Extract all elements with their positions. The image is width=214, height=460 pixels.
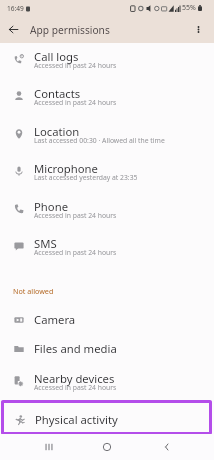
staticText: Accessed in past 24 hours bbox=[34, 248, 117, 257]
button[interactable]: Call logs bbox=[0, 43, 214, 80]
button[interactable]: Back bbox=[147, 434, 187, 460]
staticText: Call logs bbox=[34, 49, 79, 64]
staticText: Phone bbox=[34, 199, 69, 214]
staticText: Contacts bbox=[34, 86, 81, 101]
button[interactable]: SMS bbox=[0, 230, 214, 267]
button[interactable]: Back bbox=[0, 16, 27, 43]
staticText: SMS bbox=[34, 236, 57, 251]
button[interactable]: More options bbox=[185, 16, 212, 43]
button[interactable]: Home bbox=[87, 434, 127, 460]
staticText: Not allowed bbox=[13, 286, 54, 296]
staticText: Location bbox=[34, 124, 80, 139]
button[interactable]: Camera bbox=[0, 305, 214, 334]
staticText: 16:49 bbox=[7, 4, 24, 13]
button[interactable]: Recent apps bbox=[29, 434, 69, 460]
button[interactable]: Location bbox=[0, 118, 214, 155]
staticText: Last accessed yesterday at 23:35 bbox=[34, 173, 138, 182]
staticText: Accessed in past 24 hours bbox=[34, 98, 117, 107]
staticText: 55% bbox=[182, 3, 196, 13]
staticText: Accessed in past 24 hours bbox=[34, 61, 117, 70]
button[interactable]: Nearby devices bbox=[0, 365, 214, 402]
staticText: Accessed in past 24 hours bbox=[34, 383, 117, 392]
staticText: Microphone bbox=[34, 161, 98, 176]
button[interactable]: Phone bbox=[0, 193, 214, 230]
staticText: Nearby devices bbox=[34, 371, 115, 386]
staticText: Camera bbox=[34, 312, 76, 327]
staticText: Physical activity bbox=[35, 412, 118, 427]
staticText: Files and media bbox=[34, 341, 117, 356]
staticText: Accessed in past 24 hours bbox=[34, 211, 117, 220]
button[interactable]: Physical activity bbox=[1, 400, 212, 435]
button[interactable]: Files and media bbox=[0, 334, 214, 363]
staticText: App permissions bbox=[30, 23, 110, 37]
button[interactable]: Contacts bbox=[0, 80, 214, 117]
button[interactable]: Microphone bbox=[0, 155, 214, 192]
staticText: Last accessed 00:30 · Allowed all the ti… bbox=[34, 136, 165, 145]
